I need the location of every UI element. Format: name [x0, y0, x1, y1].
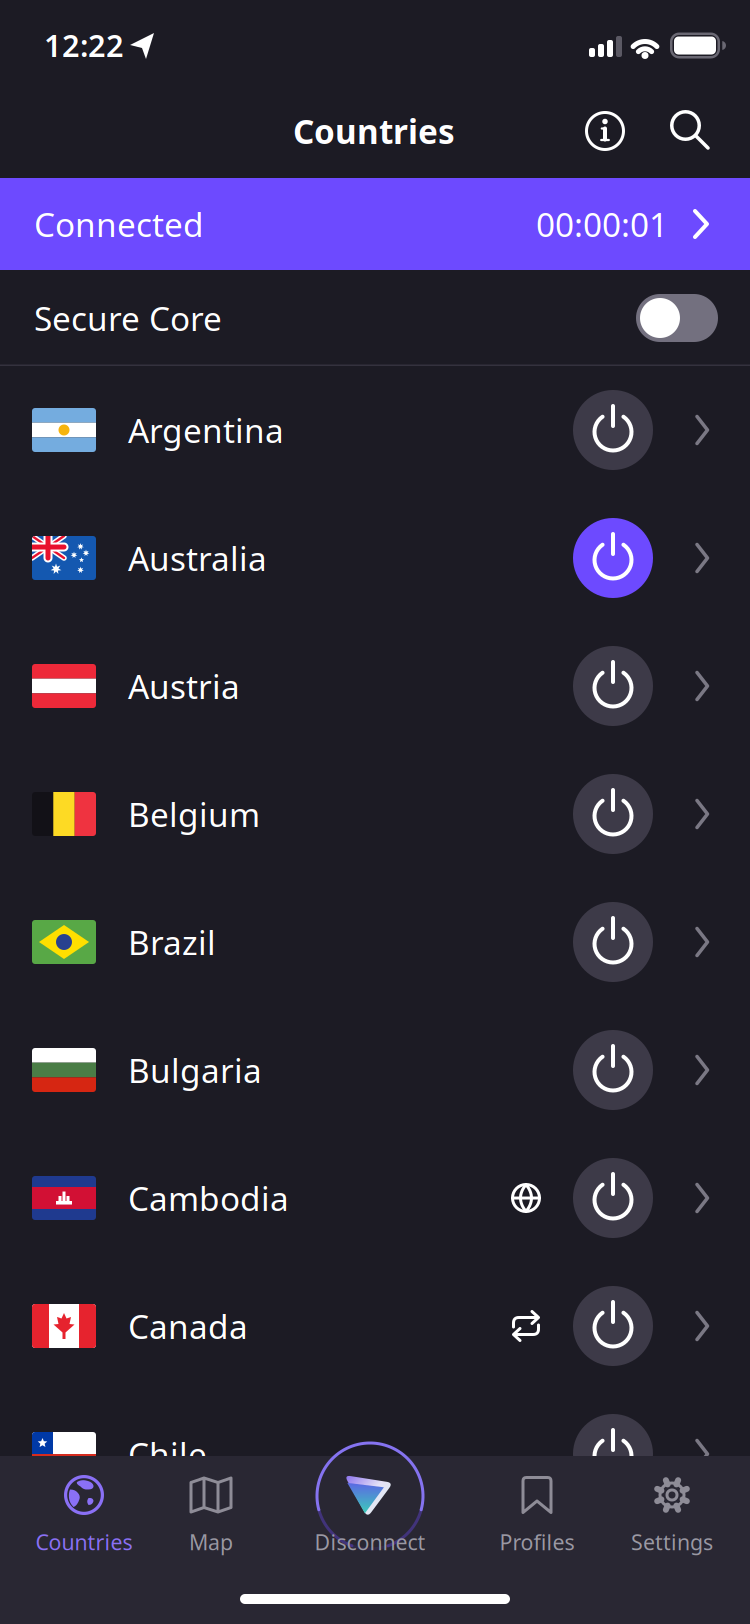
button[interactable]: Australia — [0, 494, 750, 622]
button[interactable]: Settings — [602, 1456, 742, 1568]
staticText: Disconnect — [314, 1528, 425, 1556]
button[interactable] — [573, 646, 653, 726]
staticText: Cambodia — [128, 1176, 289, 1220]
button[interactable] — [573, 774, 653, 854]
staticText: Countries — [293, 109, 455, 153]
button[interactable] — [573, 1030, 653, 1110]
button[interactable]: Chile — [0, 1390, 750, 1518]
button[interactable]: Map — [141, 1456, 281, 1568]
staticText: Brazil — [128, 920, 216, 964]
button[interactable] — [636, 294, 718, 342]
staticText: Connected — [34, 202, 204, 246]
button[interactable]: Bulgaria — [0, 1006, 750, 1134]
staticText: Australia — [128, 536, 267, 580]
button[interactable] — [573, 1414, 653, 1494]
staticText: Secure Core — [34, 296, 222, 340]
staticText: Chile — [128, 1432, 207, 1476]
button[interactable]: Cambodia — [0, 1134, 750, 1262]
button[interactable]: Profiles — [467, 1456, 607, 1568]
button[interactable] — [573, 902, 653, 982]
button[interactable]: Countries — [14, 1456, 154, 1568]
button[interactable]: Belgium — [0, 750, 750, 878]
button[interactable] — [573, 1158, 653, 1238]
staticText: Countries — [35, 1528, 132, 1556]
staticText: Map — [189, 1528, 233, 1556]
staticText: 12:22 — [44, 25, 124, 65]
staticText: Bulgaria — [128, 1048, 262, 1092]
button[interactable] — [573, 518, 653, 598]
staticText: Canada — [128, 1304, 248, 1348]
staticText: Profiles — [499, 1528, 574, 1556]
button[interactable]: Connected — [0, 178, 750, 270]
staticText: Austria — [128, 664, 240, 708]
button[interactable]: Brazil — [0, 878, 750, 1006]
button[interactable] — [573, 1286, 653, 1366]
button[interactable] — [573, 390, 653, 470]
button[interactable]: Argentina — [0, 366, 750, 494]
staticText: Argentina — [128, 408, 284, 452]
button[interactable] — [583, 109, 627, 153]
button[interactable]: Austria — [0, 622, 750, 750]
staticText: 00:00:01 — [536, 202, 668, 246]
staticText: Belgium — [128, 792, 260, 836]
staticText: Settings — [631, 1528, 713, 1556]
button[interactable]: Disconnect — [295, 1436, 445, 1572]
button[interactable]: Canada — [0, 1262, 750, 1390]
button[interactable] — [668, 109, 712, 153]
